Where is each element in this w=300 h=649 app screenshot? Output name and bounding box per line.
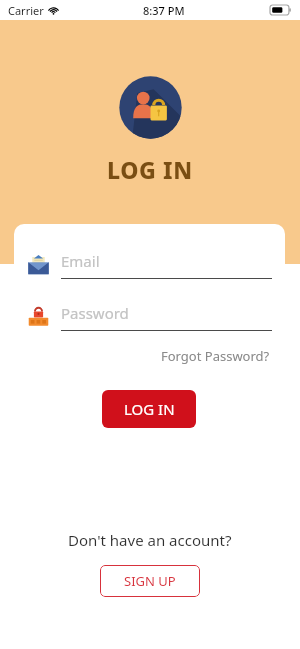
other: Email — [27, 254, 50, 277]
button[interactable]: LOG IN — [102, 390, 196, 428]
staticText: Password — [61, 303, 129, 323]
button[interactable]: Password — [25, 303, 272, 331]
staticText: Email — [61, 251, 100, 271]
other: Password — [27, 306, 50, 329]
button[interactable]: Email — [25, 251, 272, 279]
staticText: Forgot Password? — [161, 347, 270, 365]
staticText: Carrier — [8, 3, 44, 18]
button[interactable]: SIGN UP — [100, 565, 200, 597]
staticText: SIGN UP — [124, 572, 176, 590]
button[interactable]: Forgot Password? — [159, 345, 272, 367]
staticText: Don't have an account? — [68, 530, 232, 550]
staticText: 8:37 PM — [143, 3, 185, 18]
staticText: LOG IN — [107, 154, 193, 185]
staticText: LOG IN — [124, 399, 175, 419]
